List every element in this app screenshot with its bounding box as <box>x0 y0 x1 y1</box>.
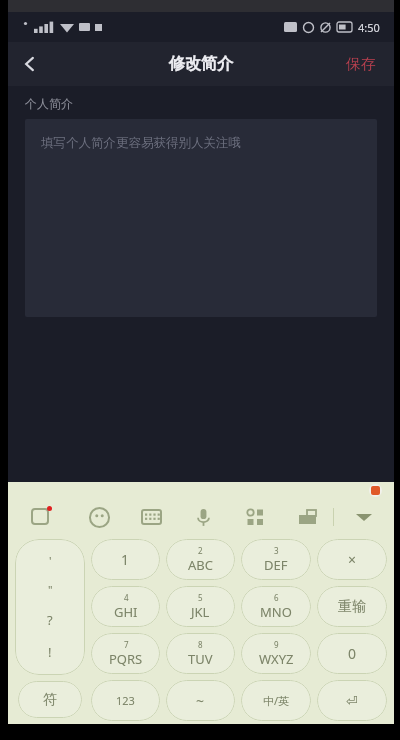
button[interactable]: Sticker <box>369 484 382 497</box>
staticText: 6 <box>274 592 279 603</box>
staticText: 3 <box>274 545 279 556</box>
button[interactable]: 0 <box>317 633 387 674</box>
button[interactable]: 1 <box>91 539 160 580</box>
button[interactable]: ' <box>15 539 85 675</box>
button[interactable]: 保存 <box>340 49 382 80</box>
staticText: MNO <box>260 603 292 621</box>
button[interactable]: 符 <box>18 681 82 718</box>
button[interactable]: 6 <box>241 586 311 627</box>
button[interactable]: 2 <box>166 539 235 580</box>
staticText: 4 <box>124 592 129 603</box>
button[interactable]: Hide keyboard <box>334 498 394 536</box>
staticText: 填写个人简介更容易获得别人关注哦 <box>41 135 241 151</box>
staticText: 符 <box>43 691 57 709</box>
staticText: " <box>48 582 53 597</box>
button[interactable]: Keyboard <box>125 498 177 536</box>
button[interactable]: Clipboard <box>281 498 333 536</box>
staticText: 个人简介 <box>25 96 73 111</box>
staticText: 9 <box>274 639 279 650</box>
button[interactable]: 7 <box>91 633 160 674</box>
button[interactable]: 填写个人简介更容易获得别人关注哦 <box>25 119 377 317</box>
staticText: 2 <box>198 545 203 556</box>
staticText: 修改简介 <box>169 54 233 74</box>
button[interactable]: 8 <box>166 633 235 674</box>
staticText: 重输 <box>338 598 366 616</box>
staticText: 5 <box>198 592 203 603</box>
button[interactable]: 5 <box>166 586 235 627</box>
button[interactable]: 重输 <box>317 586 387 627</box>
staticText: 7 <box>124 639 129 650</box>
button[interactable]: 中/英 <box>241 680 311 721</box>
button[interactable]: 9 <box>241 633 311 674</box>
button[interactable]: 3 <box>241 539 311 580</box>
staticText: ? <box>47 611 53 629</box>
staticText: 中/英 <box>263 693 290 708</box>
staticText: 8 <box>198 639 203 650</box>
staticText: 保存 <box>346 55 376 74</box>
button[interactable]: 123 <box>91 680 160 721</box>
button[interactable]: Input method <box>8 498 73 536</box>
staticText: WXYZ <box>259 650 294 668</box>
staticText: ~ <box>196 691 205 710</box>
button[interactable]: ⏎ <box>317 680 387 721</box>
button[interactable]: ~ <box>166 680 235 721</box>
staticText: TUV <box>188 650 213 668</box>
staticText: 1 <box>121 550 130 569</box>
staticText: PQRS <box>109 650 143 668</box>
button[interactable]: Tools <box>229 498 281 536</box>
staticText: JKL <box>191 603 210 621</box>
button[interactable]: 4 <box>91 586 160 627</box>
button[interactable]: Back <box>8 42 52 86</box>
staticText: GHI <box>114 603 138 621</box>
staticText: 0 <box>348 644 357 663</box>
staticText: DEF <box>264 556 288 574</box>
staticText: 4:50 <box>358 20 380 35</box>
staticText: ⏎ <box>346 693 358 709</box>
staticText: ' <box>49 553 52 568</box>
button[interactable]: Emoji <box>73 498 125 536</box>
button[interactable]: Voice input <box>177 498 229 536</box>
staticText: ! <box>48 643 52 661</box>
staticText: × <box>348 550 357 569</box>
staticText: ABC <box>188 556 213 574</box>
staticText: 123 <box>116 693 135 708</box>
button[interactable]: × <box>317 539 387 580</box>
